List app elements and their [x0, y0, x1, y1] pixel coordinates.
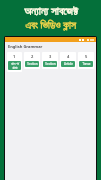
staticText: Section — [27, 62, 38, 66]
staticText: এবং ভিডিও ক্লাস — [25, 18, 76, 32]
staticText: Tense — [82, 62, 91, 66]
staticText: Article — [64, 62, 73, 66]
button[interactable]: 1 — [7, 52, 22, 72]
button[interactable]: 2 — [24, 52, 40, 69]
staticText: প্রথম পর্ব গ্রামার — [11, 62, 19, 69]
staticText: 5 — [85, 54, 88, 59]
staticText: 3 — [49, 54, 52, 59]
staticText: Section — [45, 62, 56, 66]
button[interactable]: 4 — [60, 52, 76, 69]
button[interactable]: 5 — [78, 52, 94, 69]
staticText: অন্যান্য সাবজেক্ট — [24, 3, 78, 18]
staticText: English Grammar — [8, 44, 43, 49]
staticText: 1 — [13, 54, 16, 59]
staticText: 4 — [67, 54, 70, 59]
staticText: 2 — [31, 54, 34, 59]
button[interactable]: 3 — [42, 52, 58, 69]
